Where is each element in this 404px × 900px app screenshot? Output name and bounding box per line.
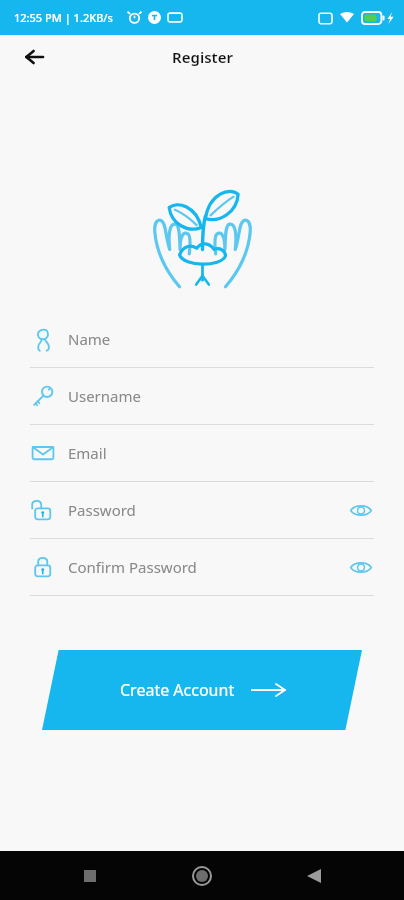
staticText: Confirm Password bbox=[68, 557, 197, 577]
button[interactable]: Toggle password visibility bbox=[346, 552, 376, 582]
button[interactable]: Back bbox=[14, 37, 54, 77]
button[interactable]: Toggle password visibility bbox=[346, 495, 376, 525]
staticText: 12:55 PM | 1.2KB/s bbox=[14, 10, 113, 25]
staticText: Email bbox=[68, 443, 107, 463]
button[interactable]: Email bbox=[0, 425, 404, 482]
button[interactable]: Name bbox=[0, 311, 404, 368]
staticText: Password bbox=[68, 500, 136, 520]
button[interactable]: Recents bbox=[68, 854, 112, 898]
button[interactable]: Password bbox=[0, 482, 404, 539]
staticText: Name bbox=[68, 329, 111, 349]
button[interactable]: Back bbox=[292, 854, 336, 898]
button[interactable]: Home bbox=[180, 854, 224, 898]
button[interactable]: Create Account bbox=[42, 650, 362, 730]
staticText: Create Account bbox=[120, 679, 235, 701]
button[interactable]: Confirm Password bbox=[0, 539, 404, 596]
staticText: Username bbox=[68, 386, 141, 406]
staticText: Register bbox=[172, 47, 233, 67]
button[interactable]: Username bbox=[0, 368, 404, 425]
